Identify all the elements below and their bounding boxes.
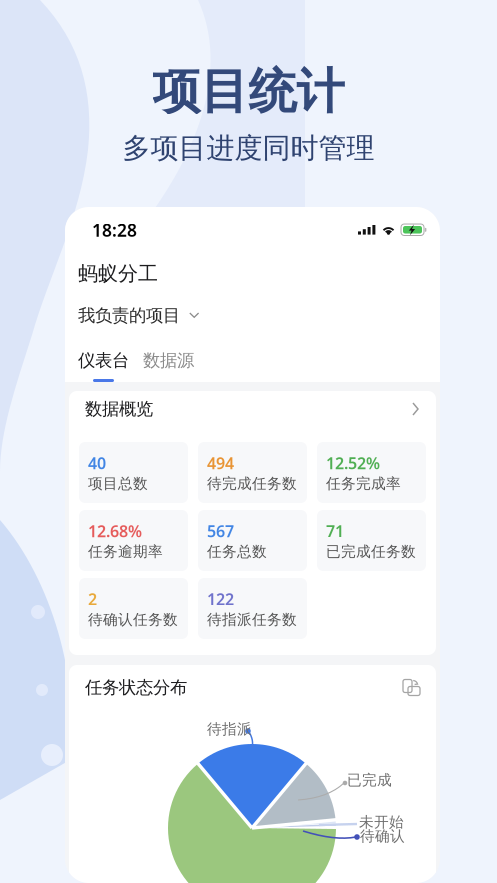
staticText: 数据源 (143, 350, 194, 371)
staticText: 122 (207, 588, 234, 610)
button[interactable]: 40 (79, 442, 188, 503)
staticText: 12.68% (88, 520, 142, 542)
button[interactable]: 12.52% (317, 442, 426, 503)
staticText: 已完成任务数 (326, 543, 416, 561)
button[interactable]: 数据源 (143, 350, 194, 382)
button[interactable]: 567 (198, 510, 307, 571)
staticText: 12.52% (326, 452, 380, 474)
staticText: 40 (88, 452, 106, 474)
button[interactable]: 71 (317, 510, 426, 571)
staticText: 待指派任务数 (207, 611, 297, 629)
staticText: 仪表台 (78, 350, 129, 371)
staticText: 项目总数 (88, 475, 148, 493)
button[interactable]: 仪表台 (78, 350, 129, 382)
staticText: 任务逾期率 (88, 543, 163, 561)
staticText: 任务完成率 (326, 475, 401, 493)
staticText: 蚂蚁分工 (78, 261, 158, 286)
staticText: 待确认 (360, 827, 405, 845)
staticText: 2 (88, 588, 97, 610)
staticText: 任务总数 (207, 543, 267, 561)
button[interactable]: Rotate chart (403, 679, 420, 695)
staticText: 18:28 (92, 218, 137, 241)
button[interactable]: 122 (198, 578, 307, 639)
button[interactable]: 494 (198, 442, 307, 503)
button[interactable]: 数据概览 (69, 391, 436, 427)
staticText: 多项目进度同时管理 (122, 131, 374, 165)
staticText: 71 (326, 520, 344, 542)
staticText: 任务状态分布 (85, 677, 187, 698)
staticText: 数据概览 (85, 398, 153, 420)
staticText: 待完成任务数 (207, 475, 297, 493)
button[interactable]: 12.68% (79, 510, 188, 571)
button[interactable]: 我负责的项目 (78, 294, 427, 337)
staticText: 我负责的项目 (78, 305, 180, 326)
staticText: 项目统计 (152, 62, 344, 121)
staticText: 已完成 (347, 771, 392, 789)
staticText: 待确认任务数 (88, 611, 178, 629)
staticText: 494 (207, 452, 234, 474)
button[interactable]: 2 (79, 578, 188, 639)
staticText: 567 (207, 520, 234, 542)
staticText: 待指派 (207, 720, 252, 738)
staticText: 未开始 (359, 813, 404, 831)
